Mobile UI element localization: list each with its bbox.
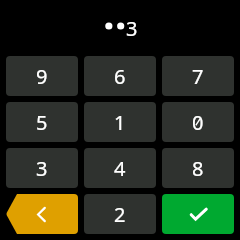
button[interactable]: Backspace	[6, 194, 78, 234]
button[interactable]: 9	[6, 56, 78, 96]
button[interactable]: 7	[162, 56, 234, 96]
staticText: 6	[114, 63, 126, 90]
staticText: 4	[114, 155, 126, 182]
staticText: 1	[114, 109, 126, 136]
staticText: 7	[192, 63, 204, 90]
button[interactable]: 0	[162, 102, 234, 142]
button[interactable]: 3	[6, 148, 78, 188]
button[interactable]: 5	[6, 102, 78, 142]
button[interactable]: 1	[84, 102, 156, 142]
button[interactable]: 2	[84, 194, 156, 234]
button[interactable]: 6	[84, 56, 156, 96]
button[interactable]: 8	[162, 148, 234, 188]
staticText: 3	[126, 15, 138, 42]
staticText: 5	[36, 109, 48, 136]
staticText: 9	[36, 63, 48, 90]
button[interactable]: 4	[84, 148, 156, 188]
button[interactable]: Confirm	[162, 194, 234, 234]
staticText: 0	[192, 109, 204, 136]
staticText: 2	[114, 201, 126, 228]
staticText: 3	[36, 155, 48, 182]
staticText: 8	[192, 155, 204, 182]
